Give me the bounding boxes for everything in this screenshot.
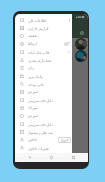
staticText: قالب های آماده — [28, 50, 50, 55]
button[interactable]: خروج — [58, 137, 71, 143]
staticText: تخفیف — [28, 34, 38, 38]
button[interactable]: دانل های سرویس — [15, 120, 72, 128]
button[interactable]: هاتی بودجه — [15, 80, 72, 88]
button[interactable]: داخلین — [15, 136, 72, 144]
staticText: حسابداری محدود — [28, 58, 52, 63]
button[interactable]: تخفیف — [15, 32, 72, 40]
button[interactable]: ثبت نظر و پیشنهاد — [15, 128, 72, 136]
button[interactable]: قالب های آماده — [15, 48, 72, 56]
button[interactable]: نتوریال — [15, 104, 72, 112]
button[interactable]: گزارش کارکرد — [15, 24, 72, 32]
staticText: خروج — [61, 138, 69, 142]
button[interactable]: Profile photo — [75, 50, 87, 62]
button[interactable]: آموزش — [15, 88, 72, 96]
staticText: دانل های سرویس — [28, 122, 53, 127]
staticText: ارتباط — [28, 42, 37, 46]
staticText: ثبت نظر و پیشنهاد — [28, 130, 54, 135]
button[interactable]: آموزش — [15, 112, 72, 120]
button[interactable]: Toggle — [64, 42, 71, 46]
button[interactable]: تغییرات داخلین — [15, 144, 72, 152]
staticText: نتوریال — [28, 106, 38, 110]
button[interactable]: زبان — [15, 64, 72, 72]
staticText: گزارش کارکرد — [28, 26, 49, 31]
button[interactable]: Back — [27, 155, 32, 160]
button[interactable]: Home — [49, 155, 54, 160]
staticText: تغییرات داخلین — [28, 146, 49, 151]
button[interactable]: پیامک بروز — [15, 72, 72, 80]
staticText: دانل های سرویس — [28, 98, 53, 103]
button[interactable]: Favourite — [79, 30, 85, 36]
staticText: هاتی بودجه — [28, 82, 44, 87]
button[interactable]: حسابداری محدود — [15, 56, 72, 64]
staticText: آموزش — [28, 114, 39, 118]
staticText: داخلین — [28, 138, 38, 142]
button[interactable]: Profile photo — [75, 38, 87, 50]
button[interactable]: Recent apps — [71, 155, 76, 160]
button[interactable]: اطلاعات کلی — [15, 16, 72, 24]
button[interactable]: ارتباط — [15, 40, 72, 48]
staticText: اطلاعات کلی — [28, 18, 47, 23]
staticText: آموزش — [28, 90, 39, 94]
staticText: پیامک بروز — [28, 74, 43, 79]
button[interactable]: دانل های سرویس — [15, 96, 72, 104]
staticText: زبان — [28, 66, 35, 70]
